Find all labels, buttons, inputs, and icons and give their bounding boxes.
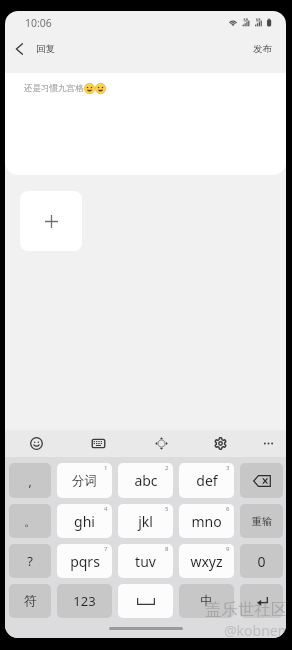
staticText: 。 [24,514,36,529]
staticText: 9 [226,545,230,553]
button[interactable]: Emoji [22,430,50,457]
staticText: 盖乐世社区 [205,599,286,620]
staticText: 1 [104,464,108,472]
staticText: abc [134,471,158,490]
button[interactable]: 分词 [57,463,112,498]
staticText: 0 [257,552,266,571]
button[interactable]: Back [5,35,33,62]
button[interactable]: jkl [118,504,173,538]
button[interactable]: 符 [9,584,51,618]
staticText: pqrs [70,552,100,571]
button[interactable]: 中 [179,584,234,618]
button[interactable]: enter [240,584,283,618]
button[interactable]: space [118,584,173,618]
staticText: 中 [200,593,213,609]
staticText: mno [191,512,222,531]
button[interactable]: 。 [9,504,51,538]
button[interactable]: More [254,430,282,457]
staticText: 3 [226,464,230,472]
staticText: 4 [104,505,108,513]
staticText: 符 [24,593,37,609]
staticText: 还是习惯九宫格 [24,83,84,94]
button[interactable]: def [179,463,234,498]
staticText: ? [27,552,33,570]
button[interactable]: Keyboard [84,430,112,457]
button[interactable]: ghi [57,504,112,538]
staticText: ghi [74,512,95,531]
staticText: 发布 [253,43,272,55]
staticText: 重输 [252,515,272,528]
staticText: 123 [73,592,96,610]
button[interactable]: wxyz [179,544,234,578]
staticText: 回复 [36,43,55,55]
staticText: @kobnem [224,621,286,638]
staticText: , [28,473,32,489]
button[interactable]: 发布 [239,35,286,62]
staticText: 2 [165,464,169,472]
staticText: 分词 [72,473,97,489]
staticText: 8 [165,545,169,553]
button[interactable]: mno [179,504,234,538]
button[interactable]: backspace [240,463,283,498]
staticText: wxyz [190,552,223,571]
staticText: 5 [165,505,169,513]
staticText: 10:06 [25,16,52,30]
staticText: def [196,471,218,490]
button[interactable]: pqrs [57,544,112,578]
button[interactable]: abc [118,463,173,498]
button[interactable]: Move cursor [147,430,175,457]
staticText: jkl [138,512,153,531]
button[interactable]: Settings [206,430,234,457]
button[interactable]: ? [9,544,51,578]
staticText: 6 [226,505,230,513]
staticText: 7 [104,545,108,553]
button[interactable]: , [9,463,51,498]
button[interactable]: 还是习惯九宫格 [5,73,286,175]
button[interactable]: 重输 [240,504,283,538]
staticText: tuv [135,552,156,571]
button[interactable]: tuv [118,544,173,578]
button[interactable]: 0 [240,544,283,578]
button[interactable]: 123 [57,584,112,618]
button[interactable]: Add image [20,191,82,251]
